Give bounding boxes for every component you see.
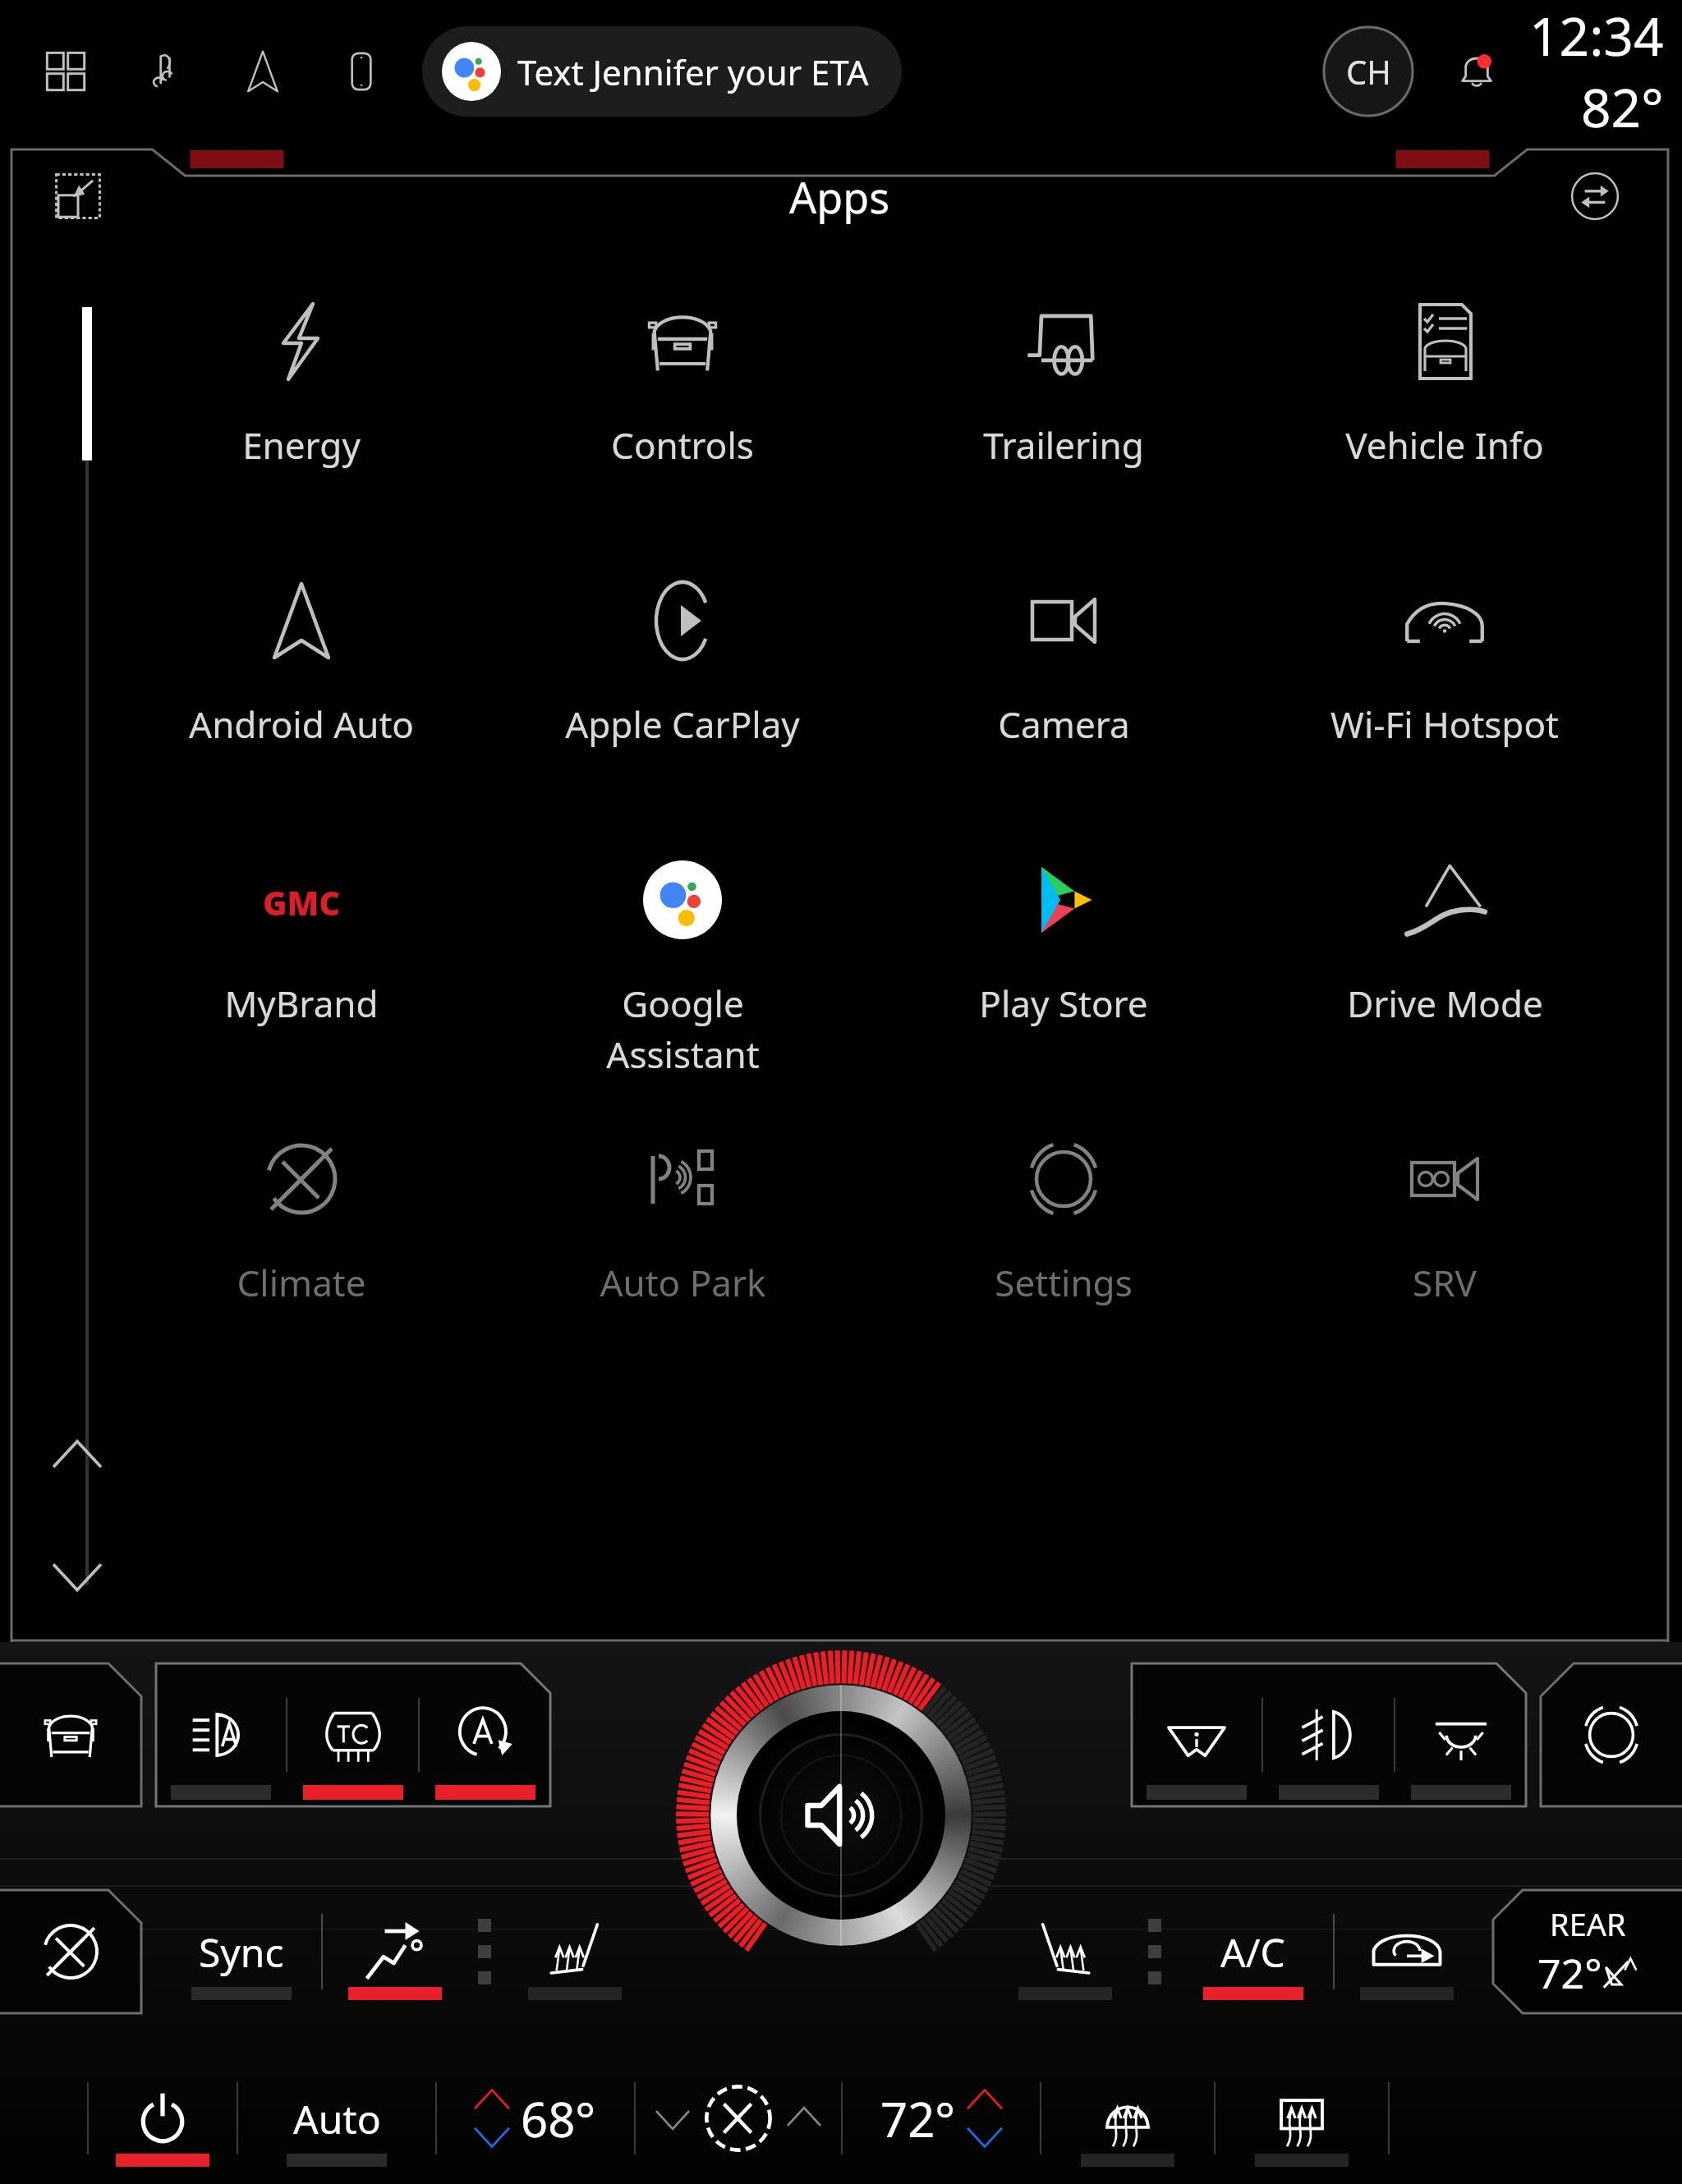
button[interactable]: Fan up (779, 2094, 829, 2143)
staticText: 82° (1581, 71, 1664, 143)
button[interactable]: Phone (329, 39, 394, 104)
staticText: 72° (1537, 1945, 1602, 2001)
button[interactable]: Left seat heat (503, 1890, 646, 2013)
staticText: 68° (521, 2086, 596, 2151)
staticText: A/C (1220, 1925, 1285, 1979)
staticText: Text Jennifer your ETA (517, 48, 869, 95)
button[interactable]: Temperature 68° (437, 2057, 634, 2180)
button[interactable]: Rear climate (1493, 1890, 1682, 2013)
button[interactable]: Camera (873, 553, 1254, 833)
staticText: Apps (789, 167, 890, 226)
button[interactable]: Apple CarPlay (492, 553, 873, 833)
staticText: Vehicle Info (1345, 420, 1544, 470)
button[interactable]: Notifications (1444, 39, 1510, 104)
staticText: Android Auto (189, 700, 414, 749)
button[interactable]: Vehicle Info (1254, 274, 1635, 553)
button[interactable]: Vehicle view (0, 1663, 141, 1806)
button[interactable]: SRV (1254, 1112, 1635, 1317)
staticText: Sync (199, 1925, 284, 1979)
button[interactable]: Scroll down (43, 1540, 112, 1609)
button[interactable]: Auto (238, 2057, 435, 2180)
button[interactable]: Apps grid (33, 39, 99, 104)
button[interactable]: Volume (673, 1647, 1009, 1984)
button[interactable]: Sync (161, 1890, 321, 2013)
button[interactable]: Wi-Fi Hotspot (1254, 553, 1635, 833)
staticText: Controls (611, 420, 754, 470)
staticText: Climate (237, 1258, 366, 1307)
button[interactable]: Media (131, 39, 197, 104)
button[interactable]: Fog lamps (1263, 1663, 1394, 1806)
button[interactable]: Swap screen (1563, 164, 1627, 228)
staticText: Apple CarPlay (565, 700, 800, 749)
button[interactable]: Energy (110, 274, 492, 553)
staticText: REAR (1550, 1902, 1626, 1945)
button[interactable]: GMC (110, 833, 492, 1112)
button[interactable]: Trailering (873, 274, 1254, 553)
button[interactable]: Climate (110, 1112, 492, 1317)
staticText: Settings (995, 1258, 1133, 1307)
button[interactable]: Play Store (873, 833, 1254, 1112)
staticText: Energy (242, 420, 361, 470)
button[interactable]: Traction control (287, 1663, 418, 1806)
staticText: Play Store (979, 979, 1148, 1028)
button[interactable]: Auto high beam (156, 1663, 286, 1806)
staticText: GMC (263, 880, 341, 920)
button[interactable]: A/C (1173, 1890, 1333, 2013)
button[interactable]: Text Jennifer your ETA (422, 26, 902, 117)
button[interactable]: Navigation (230, 39, 296, 104)
staticText: 12:34 (1529, 0, 1664, 71)
staticText: Auto Park (600, 1258, 766, 1307)
button[interactable]: Temperature 72° (843, 2057, 1040, 2180)
button[interactable]: Settings (1541, 1663, 1682, 1806)
staticText: Drive Mode (1347, 979, 1543, 1028)
button[interactable]: Google Assistant (492, 833, 873, 1112)
staticText: Trailering (983, 420, 1144, 470)
button[interactable]: Minimize (46, 164, 110, 228)
button[interactable]: Front defrost (1216, 2057, 1388, 2180)
button[interactable]: Rear defrost (1041, 2057, 1214, 2180)
button[interactable]: Dome light (1395, 1663, 1526, 1806)
staticText: Auto (293, 2092, 381, 2145)
button[interactable]: Auto Park (492, 1112, 873, 1317)
staticText: MyBrand (224, 979, 379, 1028)
button[interactable]: Recirculation (1335, 1890, 1478, 2013)
button[interactable]: Auto stop (420, 1663, 550, 1806)
staticText: Wi-Fi Hotspot (1330, 700, 1559, 749)
button[interactable]: Airflow (323, 1890, 466, 2013)
button[interactable]: Fan off (0, 1890, 141, 2013)
button[interactable]: Controls (492, 274, 873, 553)
staticText: 72° (880, 2086, 956, 2151)
button[interactable]: Profile CH (1322, 25, 1414, 117)
staticText: SRV (1413, 1258, 1477, 1307)
staticText: Camera (998, 700, 1130, 749)
button[interactable]: Drive Mode (1254, 833, 1635, 1112)
staticText: CH (1346, 49, 1391, 94)
button[interactable]: Fan down (648, 2094, 697, 2143)
staticText: Google Assistant (606, 979, 760, 1079)
button[interactable]: Washer fluid (1132, 1663, 1261, 1806)
button[interactable]: Scroll up (43, 1422, 112, 1491)
button[interactable]: Android Auto (110, 553, 492, 833)
button[interactable]: Fan (697, 2077, 779, 2159)
button[interactable]: Right seat heat (993, 1890, 1137, 2013)
button[interactable]: Power (89, 2057, 237, 2180)
button[interactable]: Settings (873, 1112, 1254, 1317)
